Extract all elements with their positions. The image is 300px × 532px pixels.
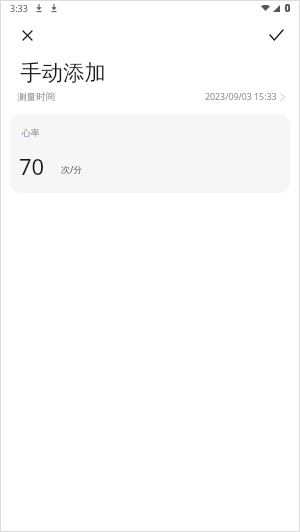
button[interactable]: Close	[10, 18, 44, 52]
staticText: 70	[19, 151, 45, 181]
staticText: 心率	[22, 128, 40, 139]
staticText: 次/分	[61, 163, 83, 175]
staticText: 测量时间	[17, 91, 55, 103]
staticText: 2023/09/03 15:33	[205, 91, 277, 103]
staticText: 手动添加	[20, 59, 106, 86]
staticText: 3:33	[10, 2, 28, 14]
button[interactable]: 心率	[10, 114, 290, 193]
button[interactable]: 测量时间	[0, 90, 300, 104]
button[interactable]: Confirm	[259, 18, 293, 52]
